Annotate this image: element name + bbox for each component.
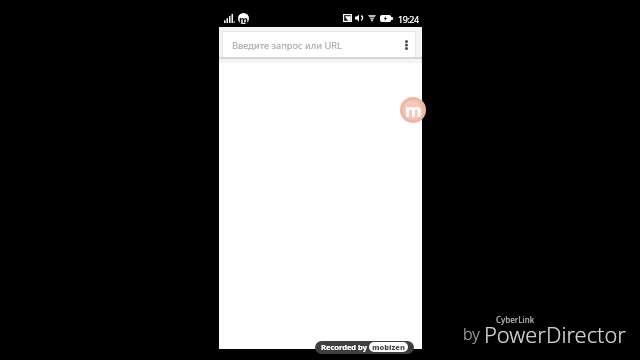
staticText: 19:24	[398, 13, 419, 25]
button[interactable]: Введите запрос или URL	[223, 32, 415, 57]
button[interactable]: More options	[395, 32, 417, 57]
staticText: Recorded by	[321, 342, 369, 352]
button[interactable]: Mobizen recorder	[400, 97, 426, 123]
staticText: PowerDirector	[484, 320, 626, 350]
staticText: mobizen	[372, 342, 405, 352]
staticText: by	[463, 323, 480, 345]
staticText: CyberLink	[496, 314, 535, 325]
staticText: m	[239, 13, 249, 24]
staticText: m	[405, 99, 422, 122]
staticText: Введите запрос или URL	[232, 39, 342, 52]
